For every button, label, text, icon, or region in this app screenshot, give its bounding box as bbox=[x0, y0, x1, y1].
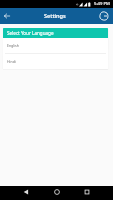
button[interactable]: Back bbox=[0, 8, 13, 24]
staticText: Select Your Language bbox=[7, 30, 54, 36]
button[interactable]: English bbox=[3, 38, 108, 53]
staticText: Settings bbox=[44, 12, 66, 20]
staticText: Hindi bbox=[7, 59, 16, 64]
button[interactable]: Recents bbox=[76, 185, 98, 199]
button[interactable]: Back bbox=[15, 185, 37, 199]
staticText: English bbox=[7, 43, 19, 48]
staticText: 5:49 PM bbox=[94, 1, 110, 7]
button[interactable]: Hindi bbox=[3, 54, 108, 69]
button[interactable]: Home bbox=[46, 185, 68, 199]
button[interactable]: Refresh bbox=[94, 8, 113, 24]
